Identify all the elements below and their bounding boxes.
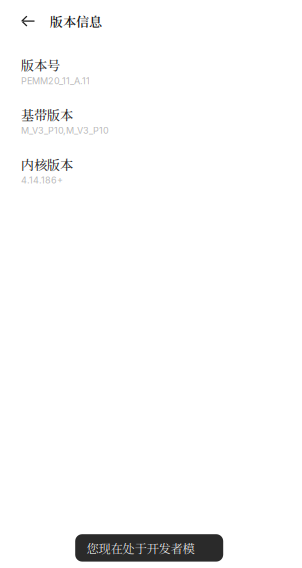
staticText: 基带版本 bbox=[21, 105, 73, 124]
staticText: 版本信息 bbox=[50, 12, 102, 31]
staticText: 您现在处于开发者模 bbox=[86, 539, 194, 557]
staticText: PEMM20_11_A.11 bbox=[21, 75, 90, 86]
staticText: M_V3_P10,M_V3_P10 bbox=[21, 125, 109, 136]
staticText: 4.14.186+ bbox=[21, 175, 63, 186]
staticText: 内核版本 bbox=[21, 155, 73, 174]
button[interactable]: Back bbox=[14, 7, 42, 35]
staticText: 版本号 bbox=[21, 55, 60, 74]
